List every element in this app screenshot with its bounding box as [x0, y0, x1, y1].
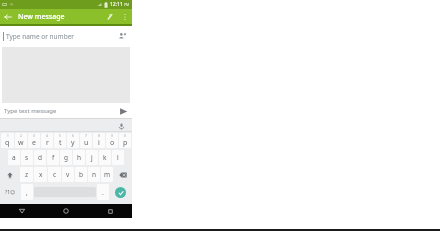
staticText: b	[79, 170, 83, 179]
button[interactable]: 7	[80, 133, 92, 148]
staticText: p	[123, 138, 128, 148]
button[interactable]: More options	[117, 9, 132, 24]
staticText: i	[98, 138, 100, 148]
staticText: x	[39, 170, 43, 179]
staticText: d	[38, 153, 42, 162]
staticText: t	[59, 138, 62, 148]
button[interactable]: ?1☺	[1, 184, 20, 200]
staticText: .	[102, 188, 104, 197]
button[interactable]: 9	[106, 133, 118, 148]
staticText: 5	[59, 134, 61, 138]
staticText: PM	[124, 2, 130, 7]
staticText: k	[103, 153, 107, 162]
button[interactable]: Send	[115, 104, 131, 118]
staticText: 9	[111, 134, 113, 138]
staticText: q	[5, 138, 10, 148]
button[interactable]: g	[60, 150, 72, 165]
button[interactable]: k	[99, 150, 111, 165]
staticText: r	[46, 138, 49, 148]
button[interactable]: 2	[15, 133, 27, 148]
staticText: a	[12, 153, 16, 162]
button[interactable]: x	[34, 167, 47, 182]
button[interactable]: Home	[44, 204, 88, 218]
button[interactable]: 0	[119, 133, 131, 148]
button[interactable]: Voice input	[116, 121, 126, 131]
staticText: 6	[72, 134, 74, 138]
button[interactable]: v	[62, 167, 74, 182]
staticText: u	[84, 138, 89, 148]
staticText: w	[18, 138, 24, 148]
staticText: s	[25, 153, 29, 162]
button[interactable]: Attach	[102, 9, 117, 24]
staticText: y	[71, 138, 75, 148]
staticText: 1	[7, 134, 9, 138]
staticText: Type name or number	[6, 32, 75, 41]
staticText: 0	[124, 134, 126, 138]
staticText: f	[52, 153, 55, 162]
button[interactable]: Navigate up	[0, 9, 15, 24]
button[interactable]: m	[101, 167, 113, 182]
staticText: m	[104, 170, 111, 179]
staticText: z	[25, 170, 29, 179]
button[interactable]: a	[8, 150, 20, 165]
staticText: c	[53, 170, 57, 179]
button[interactable]: b	[75, 167, 87, 182]
staticText: 3	[33, 134, 35, 138]
staticText: 7	[85, 134, 87, 138]
staticText: New message	[18, 12, 65, 22]
staticText: h	[77, 153, 82, 162]
button[interactable]: d	[34, 150, 46, 165]
staticText: j	[91, 153, 93, 162]
staticText: o	[110, 138, 115, 148]
button[interactable]: Recent apps	[88, 204, 132, 218]
button[interactable]: c	[48, 167, 61, 182]
button[interactable]: 1	[1, 133, 14, 148]
button[interactable]: n	[88, 167, 100, 182]
staticText: 12:11	[110, 1, 123, 8]
button[interactable]: h	[73, 150, 85, 165]
staticText: l	[117, 153, 119, 162]
staticText: v	[66, 170, 70, 179]
staticText: 2	[20, 134, 22, 138]
button[interactable]: 4	[41, 133, 53, 148]
button[interactable]: s	[21, 150, 33, 165]
button[interactable]: 3	[28, 133, 40, 148]
button[interactable]: f	[47, 150, 59, 165]
staticText: g	[64, 153, 68, 162]
button[interactable]: 5	[54, 133, 66, 148]
button[interactable]: j	[86, 150, 98, 165]
button[interactable]: Add recipient from contacts	[114, 28, 130, 44]
button[interactable]: 8	[93, 133, 105, 148]
staticText: ,	[26, 188, 28, 197]
button[interactable]: Back	[0, 204, 44, 218]
staticText: n	[92, 170, 97, 179]
button[interactable]: Shift	[1, 167, 19, 182]
button[interactable]: .	[97, 184, 109, 200]
staticText: Type text message	[4, 107, 57, 115]
staticText: ?1☺	[5, 189, 16, 196]
staticText: 8	[98, 134, 100, 138]
staticText: 4	[46, 134, 48, 138]
button[interactable]: Backspace	[114, 167, 131, 182]
button[interactable]: z	[20, 167, 33, 182]
button[interactable]: l	[112, 150, 124, 165]
button[interactable]: Enter	[115, 187, 126, 198]
staticText: e	[32, 138, 36, 148]
button[interactable]: 6	[67, 133, 79, 148]
button[interactable]: ,	[21, 184, 33, 200]
